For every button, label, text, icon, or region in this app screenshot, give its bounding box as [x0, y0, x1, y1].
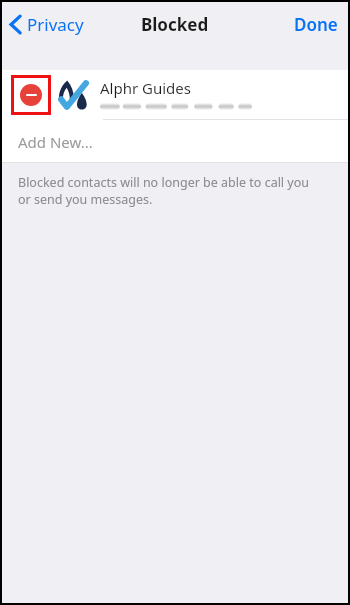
staticText: Blocked contacts will no longer be able … [18, 174, 324, 208]
staticText: Alphr Guides [100, 78, 191, 98]
button[interactable]: Privacy [2, 9, 94, 40]
button[interactable]: Done [284, 9, 348, 40]
button[interactable]: Add New... [2, 120, 348, 163]
staticText: Blocked [141, 13, 209, 36]
staticText: Add New... [18, 132, 93, 152]
staticText: Privacy [27, 13, 84, 36]
button[interactable]: Remove blocked contact [20, 84, 42, 106]
staticText: Done [294, 13, 338, 36]
